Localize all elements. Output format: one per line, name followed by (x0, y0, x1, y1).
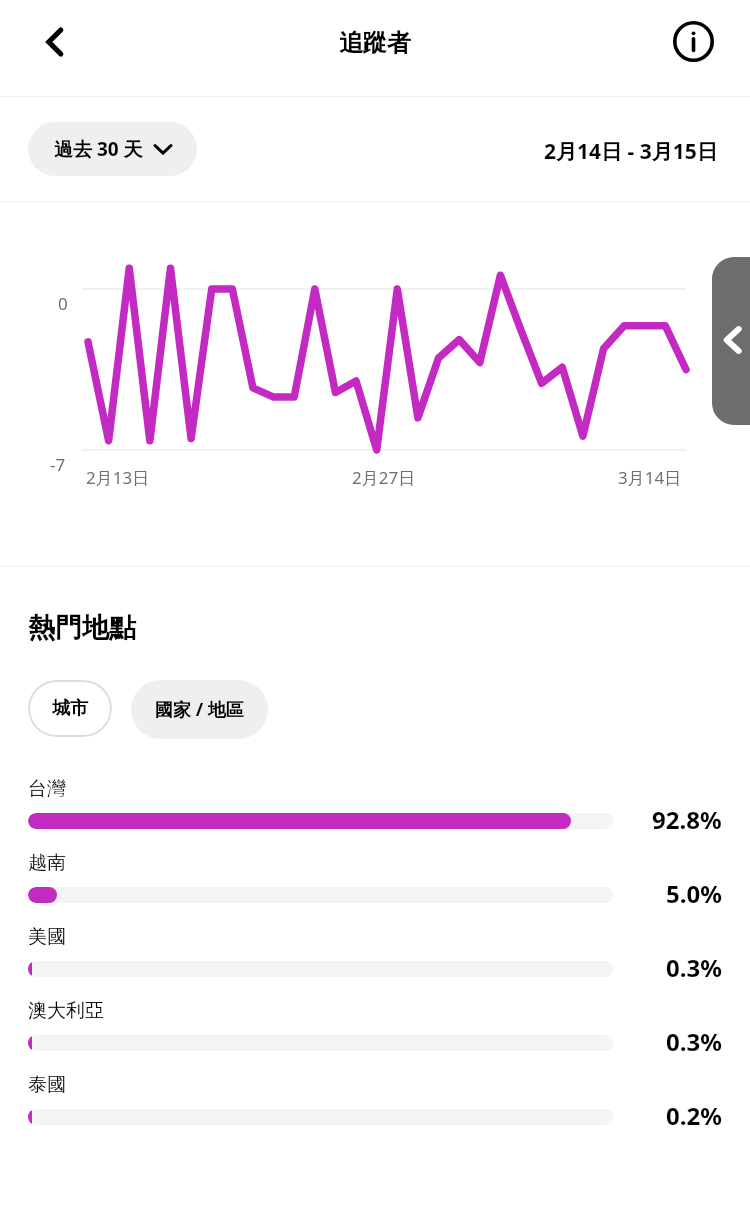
button[interactable]: Expand panel (712, 257, 750, 425)
staticText: 追蹤者 (339, 28, 411, 58)
staticText: 92.8% (652, 803, 722, 836)
staticText: 越南 (28, 851, 66, 875)
staticText: 3月14日 (618, 466, 682, 489)
staticText: 2月14日 - 3月15日 (544, 137, 718, 166)
staticText: 國家 / 地區 (155, 697, 244, 722)
button[interactable]: Information (664, 12, 722, 70)
staticText: 2月13日 (86, 466, 150, 489)
staticText: 0.2% (666, 1099, 722, 1132)
button[interactable]: 台灣 (0, 775, 750, 849)
staticText: -7 (50, 453, 66, 476)
button[interactable]: 美國 (0, 923, 750, 997)
staticText: 熱門地點 (28, 611, 136, 645)
button[interactable]: 澳大利亞 (0, 997, 750, 1071)
button[interactable]: 國家 / 地區 (131, 680, 268, 739)
staticText: 0 (58, 292, 68, 315)
button[interactable]: 泰國 (0, 1071, 750, 1145)
staticText: 泰國 (28, 1073, 66, 1097)
staticText: 台灣 (28, 777, 66, 801)
staticText: 過去 30 天 (54, 136, 143, 162)
button[interactable]: 越南 (0, 849, 750, 923)
button[interactable]: Back (24, 10, 88, 74)
staticText: 0.3% (666, 951, 722, 984)
staticText: 城市 (52, 697, 88, 720)
staticText: 2月27日 (352, 466, 416, 489)
staticText: 澳大利亞 (28, 999, 104, 1023)
button[interactable]: 城市 (28, 680, 112, 737)
staticText: 美國 (28, 925, 66, 949)
button[interactable]: 過去 30 天 (28, 122, 197, 176)
staticText: 5.0% (666, 877, 722, 910)
staticText: 0.3% (666, 1025, 722, 1058)
